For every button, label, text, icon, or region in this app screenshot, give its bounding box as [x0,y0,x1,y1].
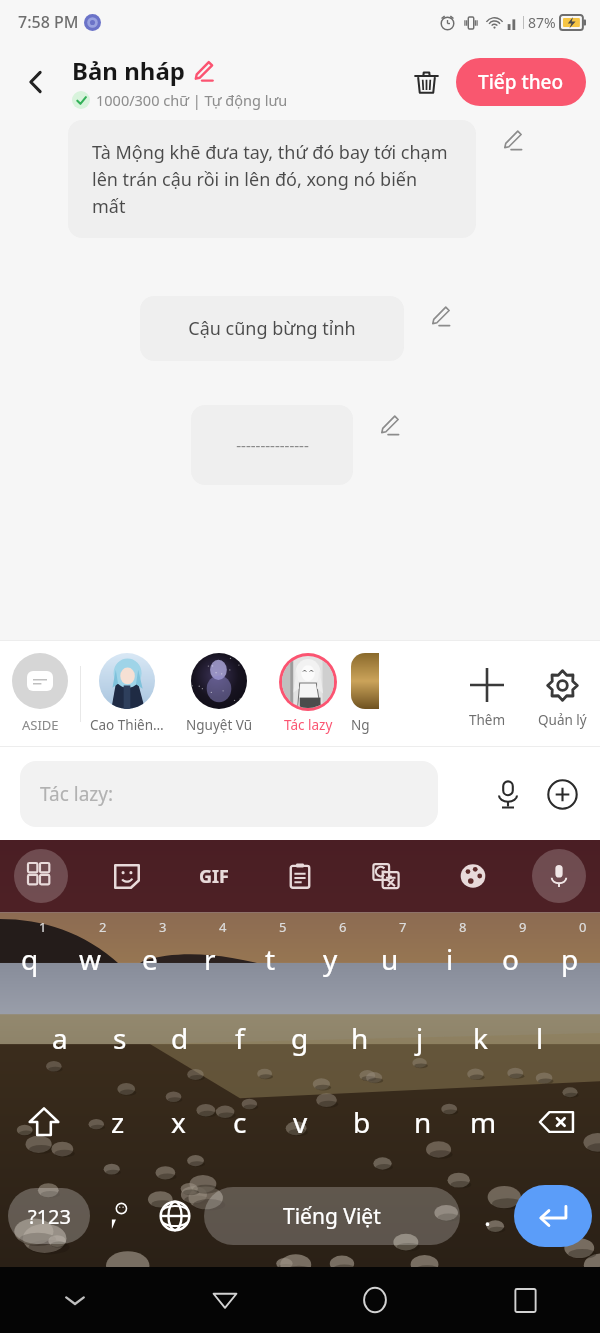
button[interactable]: Add attachment [538,770,586,818]
button[interactable]: m [453,1080,514,1164]
button[interactable]: Recent apps [450,1267,600,1333]
button[interactable]: Shift [0,1080,87,1164]
other: Manage [536,659,588,711]
button[interactable]: t [240,912,300,996]
staticText: 1000/300 chữ | Tự động lưu [96,90,288,110]
staticText: h [351,1019,369,1057]
button[interactable]: . [460,1174,514,1257]
staticText: t [265,940,276,978]
button[interactable]: b [331,1080,392,1164]
staticText: 6 [339,918,347,936]
button[interactable]: Hide keyboard [0,1267,150,1333]
button[interactable]: GIF [187,849,241,903]
button[interactable]: Edit message [420,296,460,336]
staticText: y [323,940,338,978]
button[interactable]: Back [150,1267,300,1333]
button[interactable]: Cậu cũng bừng tỉnh [140,296,404,361]
button[interactable]: Voice input [484,770,532,818]
staticText: Tiếng Việt [283,1202,381,1231]
button[interactable]: j [390,996,450,1080]
button[interactable]: Edit message [492,120,532,160]
button[interactable]: Voice typing [532,849,586,903]
button[interactable]: i [420,912,480,996]
button[interactable]: e [120,912,180,996]
button[interactable]: Tác lazy [265,641,351,746]
staticText: Tác lazy [284,716,333,734]
staticText: z [111,1103,125,1141]
button[interactable]: Stickers [100,849,154,903]
staticText: --------------- [236,435,309,455]
staticText: b [353,1103,371,1141]
button[interactable]: Theme [446,849,500,903]
button[interactable]: Tiếp theo [456,58,586,106]
button[interactable]: Clipboard [273,849,327,903]
button[interactable]: Tà Mộng khẽ đưa tay, thứ đó bay tới chạm… [68,120,476,238]
button[interactable]: Tác lazy: [20,761,438,827]
button[interactable]: Comma and emoji [90,1174,146,1257]
staticText: i [446,940,454,978]
button[interactable]: d [150,996,210,1080]
staticText: e [142,940,158,978]
button[interactable]: z [87,1080,148,1164]
button[interactable]: f [210,996,270,1080]
button[interactable]: Add character [450,641,524,746]
staticText: 87% [528,13,556,32]
button[interactable]: r [180,912,240,996]
button[interactable]: h [330,996,390,1080]
button[interactable]: --------------- [191,405,353,485]
button[interactable]: s [90,996,150,1080]
button[interactable]: Home [300,1267,450,1333]
button[interactable]: Manage [524,641,600,746]
staticText: 7:58 PM [18,11,79,33]
button[interactable]: Edit message [369,405,409,445]
staticText: Tà Mộng khẽ đưa tay, thứ đó bay tới chạm… [92,140,452,218]
button[interactable]: Backspace [514,1080,600,1164]
button[interactable]: l [510,996,570,1080]
staticText: w [79,940,102,978]
button[interactable]: ?123 [8,1188,90,1244]
button[interactable]: Change language [146,1174,204,1257]
button[interactable]: g [270,996,330,1080]
staticText: x [171,1103,186,1141]
staticText: Cậu cũng bừng tỉnh [188,316,356,341]
button[interactable]: c [209,1080,270,1164]
button[interactable]: Tiếng Việt [204,1187,460,1245]
button[interactable]: Cao Thiên… [81,641,173,746]
button[interactable]: w [60,912,120,996]
button[interactable]: n [392,1080,453,1164]
staticText: v [293,1103,308,1141]
button[interactable]: y [300,912,360,996]
button[interactable]: Enter [514,1185,592,1247]
staticText: 1 [39,918,47,936]
button[interactable]: x [148,1080,209,1164]
button[interactable]: a [30,996,90,1080]
button[interactable]: Delete draft [402,58,450,106]
button[interactable]: o [480,912,540,996]
button[interactable]: q [0,912,60,996]
other: Add character [461,659,513,711]
button[interactable]: ASIDE [0,641,80,746]
staticText: Tác lazy: [40,781,114,807]
staticText: j [416,1019,424,1057]
staticText: 5 [279,918,287,936]
button[interactable]: Ng [351,653,395,734]
staticText: ASIDE [22,716,59,734]
button[interactable]: u [360,912,420,996]
staticText: a [52,1019,68,1057]
button[interactable]: Translate [359,849,413,903]
staticText: 0 [579,918,587,936]
staticText: q [21,940,39,978]
button[interactable]: Nguyệt Vũ [173,641,265,746]
button[interactable]: Rename draft [191,59,215,83]
button[interactable]: Keyboard menu [14,849,68,903]
staticText: p [561,940,579,978]
staticText: c [233,1103,247,1141]
button[interactable]: k [450,996,510,1080]
button[interactable]: Back [8,54,64,110]
staticText: Tiếp theo [478,69,564,95]
staticText: g [291,1019,309,1057]
button[interactable]: v [270,1080,331,1164]
button[interactable]: p [540,912,600,996]
staticText: Quản lý [538,711,587,729]
staticText: k [473,1019,488,1057]
